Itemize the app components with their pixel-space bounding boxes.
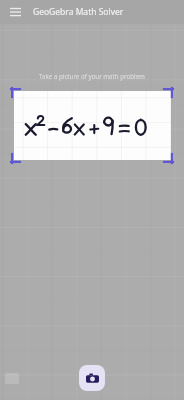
button[interactable] <box>14 91 171 160</box>
button[interactable]: Open navigation menu <box>4 1 26 23</box>
button[interactable]: Take picture <box>79 365 105 391</box>
staticText: GeoGebra Math Solver <box>33 6 124 18</box>
staticText: Take a picture of your math problem <box>39 72 145 80</box>
